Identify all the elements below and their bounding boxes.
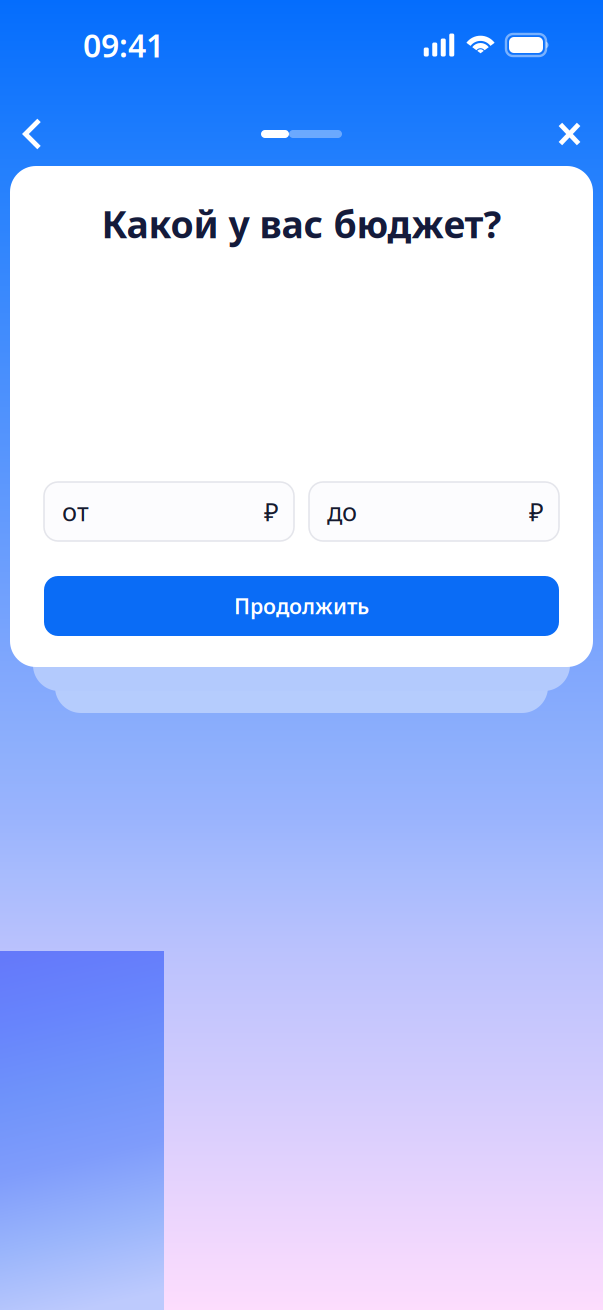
- button[interactable]: Back: [0, 105, 63, 163]
- staticText: 09:41: [83, 24, 164, 66]
- staticText: Какой у вас бюджет?: [101, 199, 501, 249]
- button[interactable]: Close: [536, 106, 603, 162]
- button[interactable]: от: [44, 482, 294, 541]
- staticText: Продолжить: [234, 592, 369, 620]
- staticText: ₽: [264, 495, 279, 528]
- button[interactable]: до: [309, 482, 559, 541]
- button[interactable]: Продолжить: [44, 576, 559, 636]
- staticText: ₽: [529, 495, 544, 528]
- staticText: от: [62, 495, 89, 528]
- staticText: до: [327, 495, 357, 528]
